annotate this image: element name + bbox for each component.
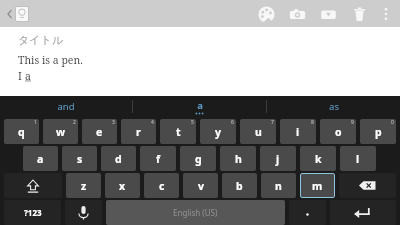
staticText: m [312, 179, 323, 193]
button[interactable]: q [4, 119, 39, 144]
button[interactable]: r [121, 119, 156, 144]
staticText: 9 [351, 119, 354, 126]
button[interactable]: b [222, 173, 257, 198]
staticText: 3 [112, 119, 115, 126]
staticText: l [356, 152, 360, 166]
staticText: p [375, 125, 382, 139]
staticText: s [77, 152, 83, 166]
button[interactable]: g [180, 146, 216, 171]
staticText: a [197, 99, 203, 112]
staticText: q [18, 125, 25, 139]
staticText: d [115, 152, 122, 166]
staticText: a [25, 69, 31, 83]
button[interactable]: o [320, 119, 356, 144]
button[interactable]: Voice input [65, 200, 102, 225]
staticText: 5 [191, 119, 194, 126]
staticText: u [255, 125, 262, 139]
button[interactable]: Archive [317, 3, 339, 25]
staticText: w [56, 125, 65, 139]
staticText: I [18, 69, 25, 83]
button[interactable]: k [300, 146, 336, 171]
staticText: b [236, 179, 243, 193]
button[interactable]: j [260, 146, 296, 171]
staticText: as [329, 100, 339, 113]
staticText: 0 [391, 119, 394, 126]
button[interactable]: e [82, 119, 117, 144]
staticText: h [235, 152, 242, 166]
staticText: and [57, 100, 75, 113]
button[interactable]: ?123 [4, 200, 61, 225]
staticText: j [276, 152, 280, 166]
staticText: ?123 [24, 207, 42, 218]
button[interactable]: Enter [330, 200, 396, 225]
button[interactable]: i [280, 119, 316, 144]
staticText: 1 [34, 119, 37, 126]
button[interactable]: x [105, 173, 140, 198]
button[interactable]: as [267, 96, 400, 117]
staticText: i [296, 125, 300, 139]
button[interactable]: m [300, 173, 335, 198]
button[interactable]: w [43, 119, 78, 144]
staticText: k [315, 152, 322, 166]
button[interactable]: u [240, 119, 276, 144]
staticText: English (US) [173, 207, 218, 218]
button[interactable]: y [200, 119, 236, 144]
button[interactable]: Delete [348, 3, 370, 25]
staticText: o [335, 125, 342, 139]
button[interactable]: Change color [255, 3, 277, 25]
button[interactable]: n [261, 173, 296, 198]
staticText: x [119, 179, 126, 193]
staticText: a [37, 152, 44, 166]
staticText: f [156, 152, 161, 166]
button[interactable]: h [220, 146, 256, 171]
button[interactable]: Period [289, 200, 326, 225]
staticText: タイトル [18, 33, 64, 47]
staticText: g [195, 152, 202, 166]
staticText: y [215, 125, 221, 139]
staticText: 8 [311, 119, 314, 126]
button[interactable]: Add image [286, 3, 308, 25]
staticText: 6 [231, 119, 234, 126]
button[interactable]: v [183, 173, 218, 198]
staticText: z [81, 179, 87, 193]
staticText: e [96, 125, 103, 139]
button[interactable]: t [160, 119, 196, 144]
button[interactable]: a [23, 146, 58, 171]
button[interactable]: d [101, 146, 136, 171]
button[interactable]: a [133, 96, 266, 117]
staticText: c [159, 179, 165, 193]
staticText: This is a pen. [18, 53, 83, 67]
staticText: n [275, 179, 282, 193]
button[interactable]: Space [106, 200, 285, 225]
button[interactable]: Navigate up [3, 1, 35, 26]
staticText: 4 [151, 119, 154, 126]
button[interactable]: f [140, 146, 176, 171]
staticText: 7 [271, 119, 274, 126]
staticText: v [198, 179, 204, 193]
button[interactable]: z [66, 173, 101, 198]
button[interactable]: and [0, 96, 132, 117]
button[interactable]: Shift [4, 173, 62, 198]
staticText: t [176, 125, 181, 139]
button[interactable]: s [62, 146, 97, 171]
staticText: r [136, 125, 141, 139]
button[interactable]: l [340, 146, 376, 171]
button[interactable]: Backspace [339, 173, 396, 198]
staticText: 2 [73, 119, 76, 126]
button[interactable]: c [144, 173, 179, 198]
button[interactable]: p [360, 119, 396, 144]
button[interactable]: More options [375, 3, 397, 25]
